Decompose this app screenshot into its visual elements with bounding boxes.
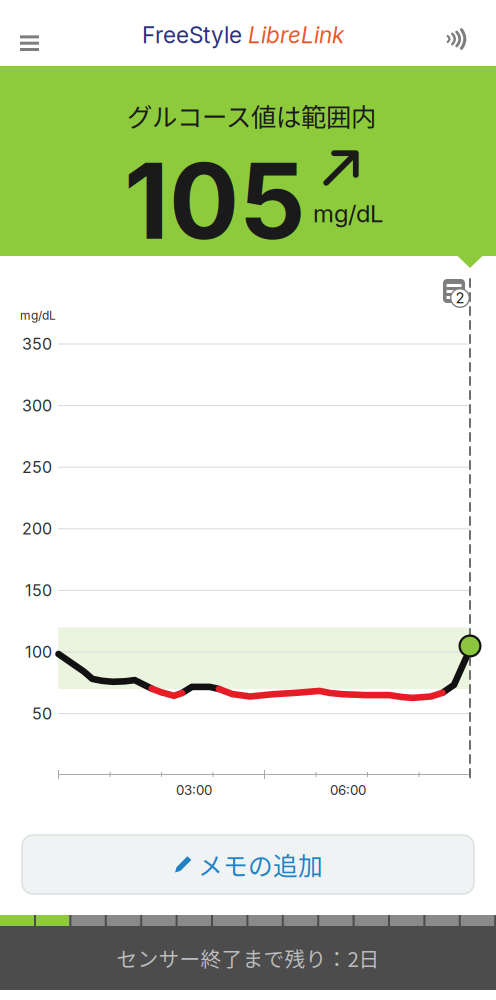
staticText: グルコース値は範囲内 (127, 97, 376, 134)
staticText: mg/dL (313, 199, 383, 228)
staticText: 250 (22, 457, 52, 477)
staticText: 2 (455, 289, 464, 307)
staticText: 03:00 (176, 782, 212, 798)
button[interactable]: Scan sensor (427, 0, 496, 66)
button[interactable]: メモの追加 (22, 835, 474, 894)
staticText: 100 (25, 642, 52, 662)
staticText: センサー終了まで残り：2日 (116, 943, 379, 973)
staticText: LibreLink (248, 21, 344, 49)
staticText: 105 (124, 138, 305, 264)
staticText: FreeStyle (142, 21, 242, 49)
staticText: 350 (22, 334, 52, 354)
staticText: 200 (22, 519, 52, 538)
staticText: 300 (22, 396, 52, 415)
staticText: 150 (25, 581, 52, 600)
staticText: 06:00 (330, 782, 366, 798)
button[interactable]: Menu (0, 0, 59, 66)
staticText: 50 (32, 704, 52, 723)
staticText: メモの追加 (198, 847, 323, 882)
staticText: mg/dL (20, 308, 56, 322)
